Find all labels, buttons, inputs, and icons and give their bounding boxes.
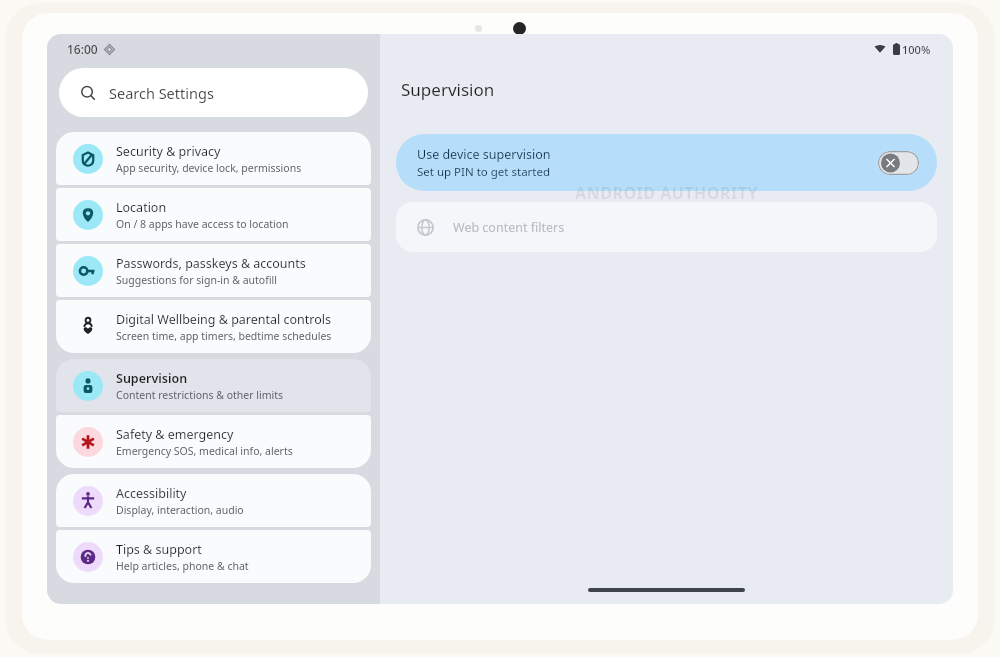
button[interactable]: Security & privacy — [56, 132, 371, 185]
staticText: Content restrictions & other limits — [116, 388, 284, 402]
button[interactable]: Web content filters — [396, 202, 937, 252]
staticText: 100% — [902, 42, 931, 57]
staticText: Safety & emergency — [116, 426, 234, 443]
button[interactable]: Use device supervision — [396, 134, 937, 191]
staticText: Passwords, passkeys & accounts — [116, 255, 306, 272]
staticText: Location — [116, 199, 167, 216]
staticText: Display, interaction, audio — [116, 503, 244, 517]
button[interactable]: Use device supervision toggle — [878, 151, 919, 175]
staticText: Emergency SOS, medical info, alerts — [116, 444, 293, 458]
staticText: ANDROID AUTHORITY — [380, 182, 953, 204]
button[interactable]: Tips & support — [56, 530, 371, 583]
staticText: On / 8 apps have access to location — [116, 217, 289, 231]
staticText: Supervision — [116, 370, 188, 387]
staticText: Security & privacy — [116, 143, 221, 160]
button[interactable]: Digital Wellbeing & parental controls — [56, 300, 371, 353]
staticText: Accessibility — [116, 485, 187, 502]
staticText: Search Settings — [109, 83, 214, 103]
button[interactable]: Supervision — [56, 359, 371, 412]
button[interactable]: Accessibility — [56, 474, 371, 527]
staticText: Web content filters — [453, 219, 565, 236]
staticText: 16:00 — [67, 41, 98, 57]
staticText: Help articles, phone & chat — [116, 559, 249, 573]
staticText: Tips & support — [116, 541, 202, 558]
button[interactable]: Location — [56, 188, 371, 241]
staticText: Supervision — [401, 78, 495, 101]
button[interactable]: Search Settings — [59, 68, 368, 117]
button[interactable]: Safety & emergency — [56, 415, 371, 468]
staticText: Screen time, app timers, bedtime schedul… — [116, 329, 332, 343]
staticText: Use device supervision — [417, 146, 551, 163]
button[interactable]: Passwords, passkeys & accounts — [56, 244, 371, 297]
staticText: Digital Wellbeing & parental controls — [116, 311, 332, 328]
staticText: Set up PIN to get started — [417, 164, 551, 180]
staticText: App security, device lock, permissions — [116, 161, 302, 175]
staticText: Suggestions for sign-in & autofill — [116, 273, 277, 287]
